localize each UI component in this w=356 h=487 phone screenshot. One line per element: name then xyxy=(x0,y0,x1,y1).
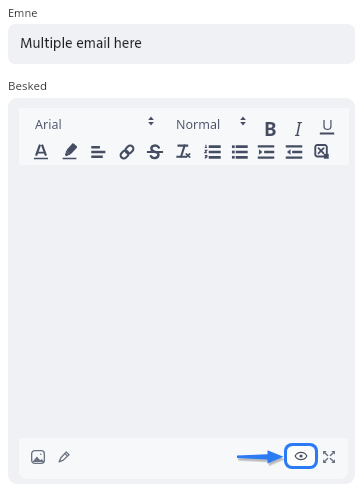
button[interactable]: Fullscreen xyxy=(322,450,336,464)
button[interactable]: Underline xyxy=(317,116,337,136)
button[interactable]: Decrease indent xyxy=(286,144,302,160)
staticText: B xyxy=(264,116,277,136)
button[interactable]: Draw xyxy=(57,449,72,464)
button[interactable]: Bold xyxy=(260,116,280,136)
button[interactable]: Font selector xyxy=(144,114,158,128)
button[interactable]: Preview xyxy=(287,446,315,466)
button[interactable]: Insert image xyxy=(31,450,45,464)
staticText: Besked xyxy=(8,78,48,94)
staticText: I xyxy=(295,116,302,136)
button[interactable]: Text color xyxy=(33,144,49,160)
staticText: Emne xyxy=(8,5,38,20)
button[interactable]: Paragraph style xyxy=(236,114,250,128)
button[interactable]: Increase indent xyxy=(258,144,274,160)
button[interactable]: Multiple email here xyxy=(8,24,355,64)
button[interactable]: Clear formatting xyxy=(175,144,191,160)
button[interactable]: Insert table xyxy=(314,144,330,160)
staticText: U xyxy=(322,114,333,134)
button[interactable]: Insert link xyxy=(119,144,135,160)
button[interactable]: Align xyxy=(90,144,106,160)
button[interactable]: Bulleted list xyxy=(231,144,247,160)
staticText: Multiple email here xyxy=(20,33,142,56)
button[interactable]: Strikethrough xyxy=(147,144,163,160)
staticText: Normal xyxy=(176,116,221,133)
button[interactable]: Highlight color xyxy=(62,144,78,160)
button[interactable]: Numbered list xyxy=(204,144,220,160)
button[interactable]: Italic xyxy=(288,116,308,136)
staticText: Arial xyxy=(35,116,62,133)
